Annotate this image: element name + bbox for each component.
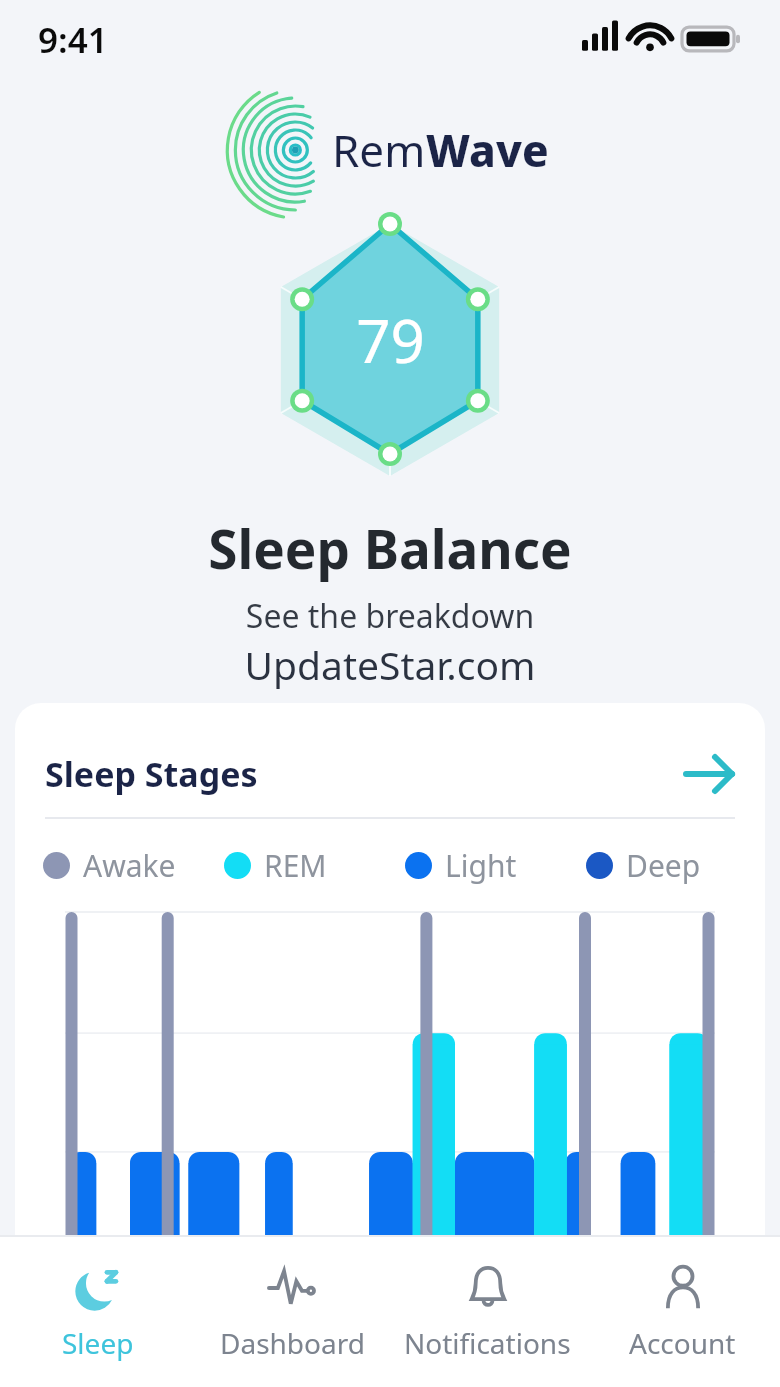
button[interactable]: Sleep Stages: [45, 751, 735, 797]
staticText: Sleep Balance: [0, 512, 780, 584]
staticText: See the breakdown: [0, 594, 780, 638]
staticText: Awake: [83, 845, 176, 886]
staticText: Deep: [626, 845, 701, 886]
staticText: Sleep Stages: [45, 751, 683, 797]
button[interactable]: Notifications: [390, 1235, 585, 1387]
staticText: UpdateStar.com: [0, 638, 780, 691]
staticText: REM: [264, 845, 327, 886]
staticText: 9:41: [38, 16, 108, 64]
staticText: 79: [356, 299, 425, 381]
staticText: Account: [629, 1324, 736, 1362]
staticText: Wave: [426, 120, 549, 180]
staticText: Light: [445, 845, 517, 886]
staticText: Sleep: [62, 1324, 134, 1362]
button[interactable]: Account: [585, 1235, 780, 1387]
button[interactable]: Sleep: [0, 1235, 195, 1387]
button[interactable]: Dashboard: [195, 1235, 390, 1387]
staticText: Dashboard: [220, 1324, 365, 1362]
staticText: Notifications: [404, 1324, 571, 1362]
other: Open sleep stages: [683, 755, 735, 793]
staticText: Rem: [332, 120, 426, 180]
